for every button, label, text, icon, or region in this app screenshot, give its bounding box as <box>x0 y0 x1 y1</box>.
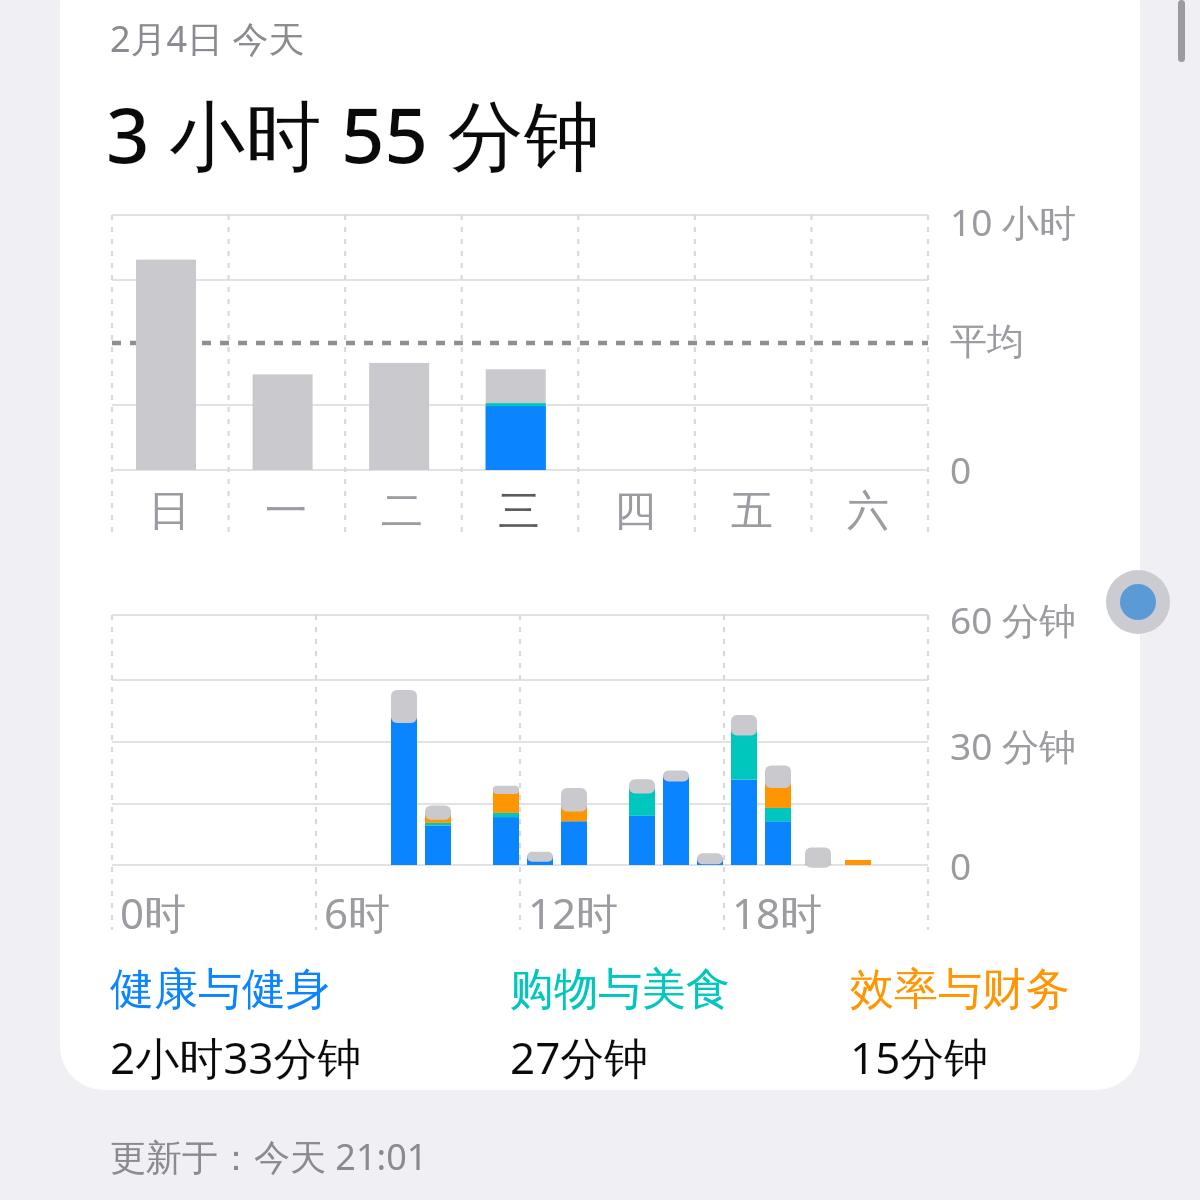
staticText: 30 分钟 <box>950 720 1076 771</box>
staticText: 六 <box>847 485 889 538</box>
staticText: 60 分钟 <box>950 594 1076 645</box>
staticText: 3 小时 55 分钟 <box>106 82 600 186</box>
button[interactable]: 60 分钟 <box>0 0 1200 1200</box>
button[interactable]: 健康与健身 <box>110 962 362 1087</box>
staticText: 五 <box>731 485 773 538</box>
staticText: 日 <box>148 485 190 538</box>
staticText: 0 <box>950 444 972 494</box>
staticText: 12时 <box>528 884 619 941</box>
staticText: 0时 <box>120 884 187 941</box>
staticText: 6时 <box>324 884 391 941</box>
staticText: 10 小时 <box>950 196 1076 247</box>
staticText: 二 <box>381 485 423 538</box>
staticText: 购物与美食 <box>510 962 730 1017</box>
button[interactable]: 购物与美食 <box>510 962 730 1087</box>
staticText: 15分钟 <box>850 1027 989 1087</box>
button[interactable]: Page indicator <box>1106 570 1170 634</box>
staticText: 效率与财务 <box>850 962 1070 1017</box>
staticText: 0 <box>950 840 972 890</box>
staticText: 27分钟 <box>510 1027 649 1087</box>
button[interactable]: 效率与财务 <box>850 962 1070 1087</box>
staticText: 三 <box>498 485 540 538</box>
staticText: 2小时33分钟 <box>110 1027 362 1087</box>
staticText: 18时 <box>732 884 823 941</box>
staticText: 健康与健身 <box>110 962 330 1017</box>
staticText: 2月4日 今天 <box>110 14 305 63</box>
staticText: 四 <box>614 485 656 538</box>
staticText: 一 <box>265 485 307 538</box>
staticText: 更新于：今天 21:01 <box>110 1132 428 1181</box>
button[interactable]: 10 小时 <box>0 0 1200 560</box>
button[interactable] <box>60 0 1140 1090</box>
staticText: 平均 <box>950 318 1024 365</box>
